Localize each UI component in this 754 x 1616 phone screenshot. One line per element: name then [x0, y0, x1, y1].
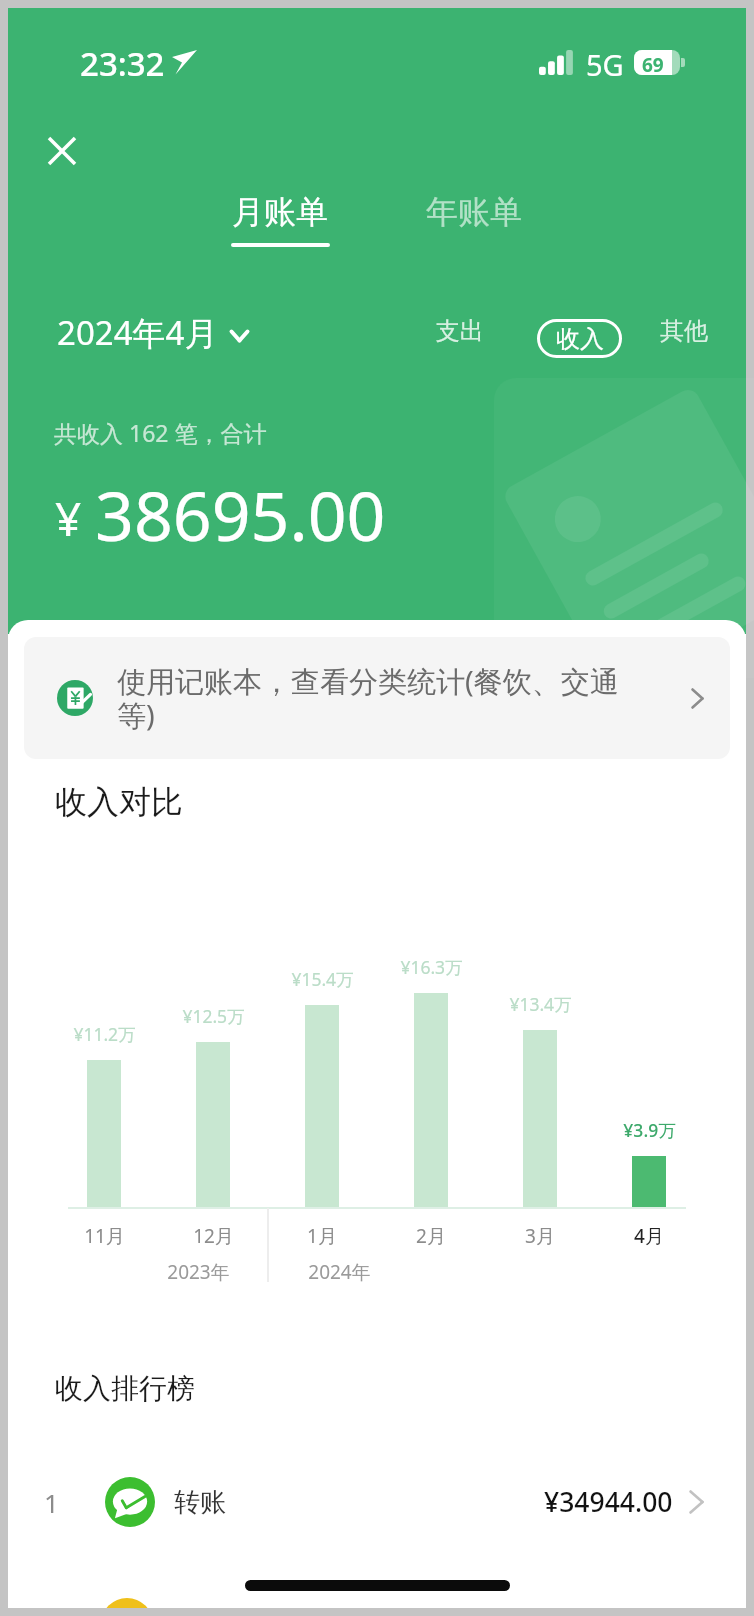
- staticText: 共收入 162 笔，合计: [54, 417, 267, 448]
- staticText: ¥13.4万: [509, 992, 572, 1016]
- staticText: 2月: [416, 1223, 446, 1249]
- staticText: 12月: [193, 1223, 234, 1249]
- staticText: 年账单: [426, 192, 522, 232]
- button[interactable]: 年账单: [406, 192, 542, 247]
- staticText: ¥15.4万: [291, 967, 354, 991]
- staticText: ¥16.3万: [400, 955, 463, 979]
- staticText: 2024年: [308, 1259, 371, 1285]
- button[interactable]: 收入: [537, 319, 622, 358]
- staticText: 4月: [634, 1223, 664, 1249]
- staticText: 其他: [660, 316, 708, 346]
- staticText: ¥11.2万: [73, 1022, 136, 1046]
- button[interactable]: 2024年4月: [49, 304, 257, 361]
- staticText: 5G: [586, 45, 624, 84]
- staticText: ¥34944.00: [544, 1484, 673, 1520]
- staticText: 支出: [436, 316, 484, 346]
- button[interactable]: 使用记账本，查看分类统计(餐饮、交通等): [24, 637, 730, 759]
- staticText: 69: [642, 52, 664, 78]
- staticText: 1月: [307, 1223, 337, 1249]
- staticText: 收入排行榜: [55, 1371, 195, 1406]
- staticText: ¥: [55, 487, 82, 550]
- staticText: 月账单: [232, 192, 328, 232]
- staticText: 使用记账本，查看分类统计(餐饮、交通等): [117, 661, 623, 735]
- staticText: 收入: [556, 324, 604, 354]
- staticText: 11月: [84, 1223, 125, 1249]
- button[interactable]: 1: [8, 1453, 746, 1551]
- staticText: 3月: [525, 1223, 555, 1249]
- button[interactable]: 支出: [426, 306, 494, 356]
- staticText: 38695.00: [95, 468, 386, 561]
- button[interactable]: Close: [38, 127, 86, 175]
- staticText: 转账: [174, 1486, 226, 1519]
- staticText: ¥12.5万: [182, 1004, 245, 1028]
- staticText: 2023年: [167, 1259, 230, 1285]
- staticText: 1: [44, 1485, 59, 1520]
- staticText: 收入对比: [55, 782, 183, 822]
- staticText: 23:32: [80, 41, 165, 86]
- button[interactable]: 月账单: [212, 192, 348, 247]
- staticText: 2024年4月: [57, 310, 218, 355]
- staticText: ¥3.9万: [623, 1118, 676, 1142]
- button[interactable]: 其他: [650, 306, 718, 356]
